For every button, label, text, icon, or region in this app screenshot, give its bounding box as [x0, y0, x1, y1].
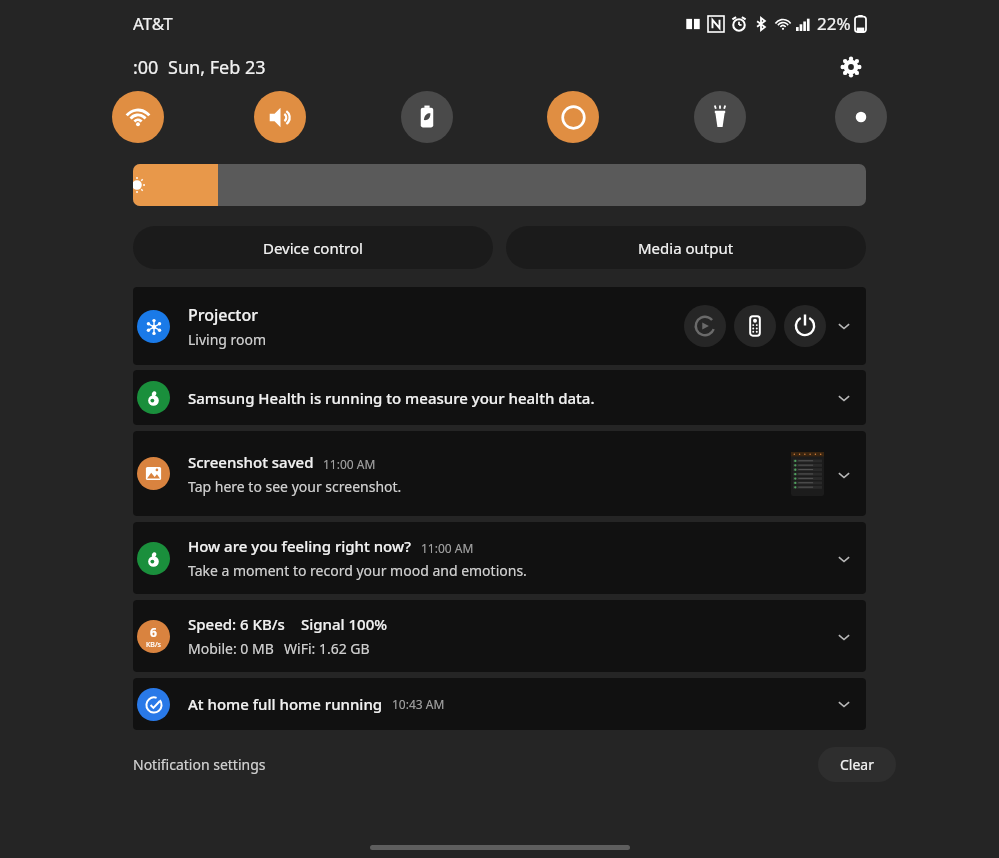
staticText: WiFi: 1.62 GB	[284, 639, 370, 658]
button[interactable]: Quick setting	[112, 91, 164, 143]
staticText: 6	[150, 624, 157, 640]
button[interactable]: Media output	[506, 226, 866, 269]
button[interactable]: How are you feeling right now?	[133, 522, 866, 594]
button[interactable]: Quick setting	[547, 91, 599, 143]
staticText: Samsung Health is running to measure you…	[188, 388, 595, 408]
button[interactable]: At home full home running	[133, 678, 866, 730]
button[interactable]: Play	[684, 305, 726, 347]
button[interactable]: Quick setting	[694, 91, 746, 143]
staticText: 11:00 AM	[323, 456, 376, 472]
staticText: KB/s	[146, 640, 161, 650]
button[interactable]: 6	[133, 600, 866, 672]
button[interactable]: Quick setting	[254, 91, 306, 143]
staticText: 22%	[817, 12, 851, 35]
other: Expand	[836, 551, 852, 567]
button[interactable]: Projector	[133, 287, 866, 365]
staticText: Mobile: 0 MB	[188, 639, 274, 658]
other: Expand	[836, 629, 852, 645]
staticText: At home full home running	[188, 694, 383, 714]
staticText: Projector	[188, 304, 259, 326]
button[interactable]: Samsung Health is running to measure you…	[133, 370, 866, 425]
button[interactable]: Device control	[133, 226, 493, 269]
button[interactable]: Settings	[836, 52, 866, 82]
other: Expand	[836, 318, 852, 334]
staticText: 10:43 AM	[392, 696, 445, 712]
staticText: Tap here to see your screenshot.	[188, 477, 402, 496]
staticText: 11:00 AM	[421, 540, 474, 556]
staticText: Notification settings	[133, 755, 266, 774]
button[interactable]: Clear	[818, 747, 896, 782]
button[interactable]: Quick setting	[401, 91, 453, 143]
button[interactable]: Quick setting	[835, 91, 887, 143]
button[interactable]: Notification settings	[133, 751, 266, 778]
staticText: Media output	[638, 238, 734, 258]
staticText: Device control	[263, 238, 363, 258]
other: Expand	[836, 467, 852, 483]
button[interactable]: Power	[784, 305, 826, 347]
staticText: AT&T	[133, 12, 173, 35]
other: Expand	[836, 696, 852, 712]
staticText: :00	[133, 55, 159, 80]
button[interactable]: Screenshot saved	[133, 431, 866, 516]
staticText: Living room	[188, 330, 267, 349]
staticText: Speed: 6 KB/s	[188, 614, 285, 634]
staticText: Take a moment to record your mood and em…	[188, 561, 527, 580]
other: Expand	[836, 390, 852, 406]
staticText: How are you feeling right now?	[188, 536, 412, 556]
button[interactable]: Remote	[734, 305, 776, 347]
staticText: Screenshot saved	[188, 452, 314, 472]
staticText: Sun, Feb 23	[168, 55, 266, 80]
staticText: Clear	[840, 755, 874, 774]
button[interactable]: Brightness	[133, 164, 866, 206]
staticText: Signal 100%	[301, 614, 388, 634]
